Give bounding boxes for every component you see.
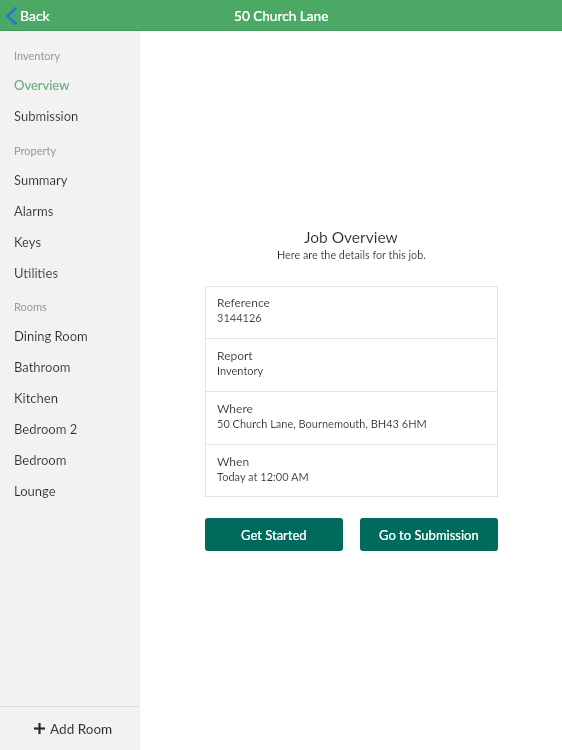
staticText: Keys: [14, 234, 42, 250]
button[interactable]: Alarms: [0, 195, 140, 226]
staticText: Dining Room: [14, 328, 88, 344]
staticText: Kitchen: [14, 390, 58, 406]
button[interactable]: Bedroom: [0, 444, 140, 475]
button[interactable]: Go to Submission: [360, 518, 498, 551]
staticText: Get Started: [241, 527, 307, 543]
staticText: Today at 12:00 AM: [217, 470, 309, 483]
staticText: Summary: [14, 172, 68, 188]
button[interactable]: Add Room: [0, 707, 140, 750]
staticText: Inventory: [14, 49, 61, 62]
button[interactable]: Lounge: [0, 475, 140, 506]
button[interactable]: Back: [0, 0, 60, 31]
staticText: Back: [20, 7, 50, 24]
staticText: Here are the details for this job.: [277, 248, 426, 261]
button[interactable]: Submission: [0, 100, 140, 131]
button[interactable]: Overview: [0, 69, 140, 100]
button[interactable]: Bedroom 2: [0, 413, 140, 444]
staticText: Inventory: [217, 364, 264, 377]
staticText: Overview: [14, 77, 70, 93]
staticText: When: [217, 454, 250, 468]
button[interactable]: Where: [205, 392, 498, 444]
staticText: Submission: [14, 108, 79, 124]
staticText: Where: [217, 401, 253, 415]
button[interactable]: Dining Room: [0, 320, 140, 351]
button[interactable]: Summary: [0, 164, 140, 195]
button[interactable]: Keys: [0, 226, 140, 257]
staticText: Reference: [217, 295, 270, 309]
staticText: Alarms: [14, 203, 54, 219]
staticText: Bathroom: [14, 359, 71, 375]
staticText: Job Overview: [304, 228, 398, 247]
staticText: Property: [14, 144, 57, 157]
staticText: 50 Church Lane, Bournemouth, BH43 6HM: [217, 417, 427, 430]
staticText: Utilities: [14, 265, 59, 281]
staticText: 3144126: [217, 311, 262, 324]
staticText: Bedroom 2: [14, 421, 78, 437]
button[interactable]: Bathroom: [0, 351, 140, 382]
button[interactable]: Report: [205, 339, 498, 391]
button[interactable]: Kitchen: [0, 382, 140, 413]
staticText: Rooms: [14, 300, 47, 313]
button[interactable]: Utilities: [0, 257, 140, 288]
button[interactable]: When: [205, 445, 498, 497]
staticText: 50 Church Lane: [234, 8, 329, 24]
staticText: Go to Submission: [379, 527, 479, 543]
button[interactable]: Reference: [205, 286, 498, 338]
button[interactable]: Get Started: [205, 518, 343, 551]
staticText: Add Room: [50, 721, 113, 737]
staticText: Report: [217, 348, 253, 362]
staticText: Bedroom: [14, 452, 67, 468]
staticText: Lounge: [14, 483, 56, 499]
